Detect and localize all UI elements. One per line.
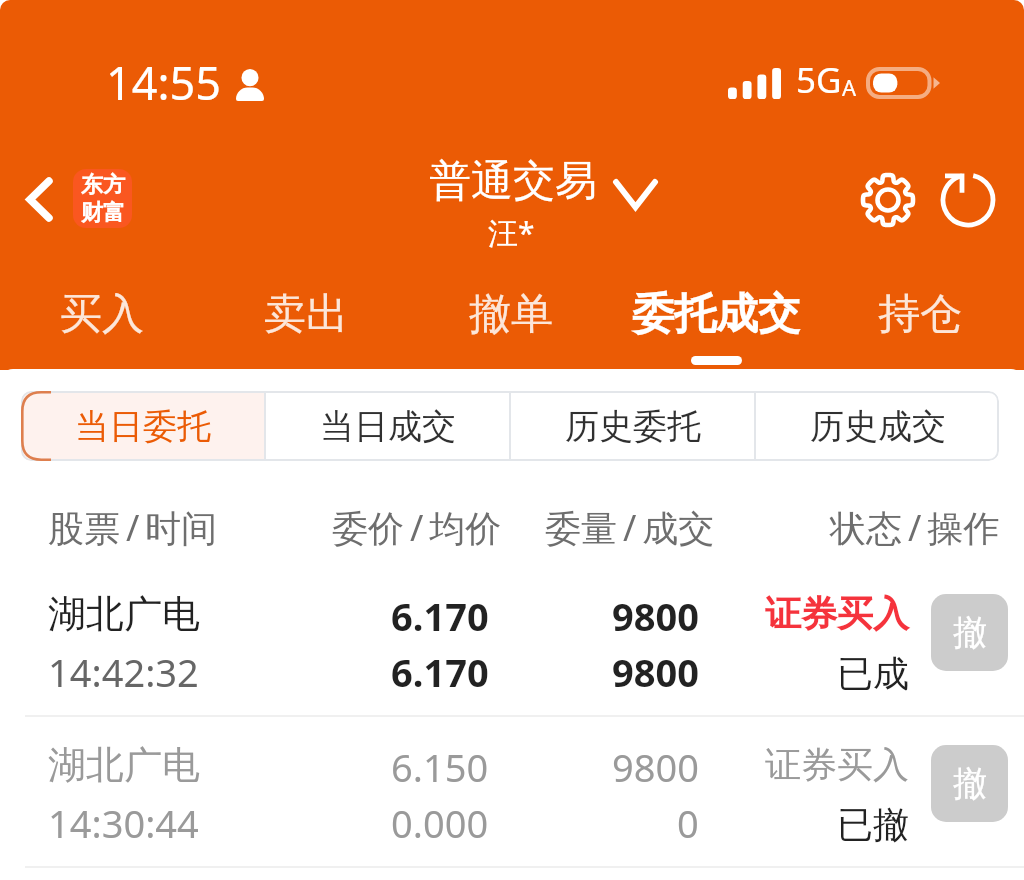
button[interactable]: 撤 (931, 745, 1008, 822)
button[interactable]: East Money (73, 169, 132, 228)
staticText: 湖北广电 (48, 590, 200, 638)
staticText: 6.170 (391, 590, 489, 642)
staticText: A (842, 72, 857, 102)
button[interactable] (0, 565, 1024, 716)
button[interactable]: 撤单 (409, 288, 613, 374)
button[interactable]: 当日成交 (266, 391, 509, 461)
button[interactable]: Settings (854, 166, 922, 234)
staticText: 5G (796, 56, 842, 104)
staticText: 已成 (837, 651, 909, 696)
staticText: 买入 (60, 288, 144, 341)
staticText: 历史成交 (810, 405, 946, 448)
staticText: 证券买入 (765, 591, 909, 636)
button[interactable] (0, 716, 1024, 867)
staticText: 撤 (953, 611, 987, 654)
button[interactable]: 普通交易 (429, 155, 655, 208)
staticText: 状态 / 操作 (830, 503, 1000, 552)
staticText: 9800 (612, 741, 699, 793)
button[interactable]: 卖出 (204, 288, 408, 374)
button[interactable]: 持仓 (818, 288, 1022, 374)
staticText: 9800 (612, 646, 699, 698)
staticText: 14:30:44 (48, 797, 199, 849)
staticText: 14:55 (106, 52, 222, 113)
staticText: 财富 (81, 199, 125, 227)
staticText: 汪* (488, 212, 535, 253)
staticText: 撤单 (469, 288, 553, 341)
button[interactable]: 当日委托 (21, 391, 264, 461)
staticText: 委价 / 均价 (332, 503, 502, 552)
button[interactable]: 买入 (0, 288, 204, 374)
staticText: 6.150 (391, 741, 489, 793)
button[interactable]: Refresh (936, 168, 1000, 232)
button[interactable]: 历史成交 (756, 391, 999, 461)
button[interactable]: 委托成交 (614, 288, 818, 374)
staticText: 证券买入 (765, 742, 909, 787)
staticText: 委托成交 (632, 288, 800, 341)
button[interactable]: Back (7, 167, 71, 231)
staticText: 6.170 (391, 646, 489, 698)
staticText: 0.000 (391, 797, 489, 849)
staticText: 9800 (612, 590, 699, 642)
staticText: 0 (677, 797, 699, 849)
staticText: 持仓 (878, 288, 962, 341)
staticText: 当日委托 (75, 405, 211, 448)
button[interactable]: 历史委托 (511, 391, 754, 461)
staticText: 撤 (953, 762, 987, 805)
staticText: 股票 / 时间 (48, 503, 218, 552)
staticText: 当日成交 (320, 405, 456, 448)
staticText: 历史委托 (565, 405, 701, 448)
staticText: 14:42:32 (48, 646, 199, 698)
staticText: 已撤 (837, 802, 909, 847)
staticText: 湖北广电 (48, 741, 200, 789)
staticText: 卖出 (264, 288, 348, 341)
staticText: 普通交易 (429, 155, 597, 208)
staticText: 东方 (81, 171, 125, 199)
button[interactable]: 撤 (931, 594, 1008, 671)
staticText: 委量 / 成交 (545, 503, 715, 552)
